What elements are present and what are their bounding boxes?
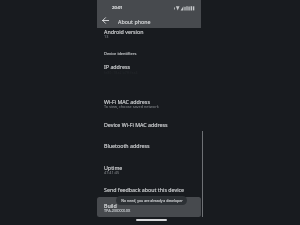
staticText: IP address bbox=[104, 63, 131, 70]
staticText: Device identifiers bbox=[104, 51, 137, 56]
staticText: Bluetooth address bbox=[104, 142, 150, 149]
staticText: TPA.230XXX.0X bbox=[104, 208, 131, 213]
button[interactable]: IP address bbox=[97, 62, 201, 96]
button[interactable]: Back bbox=[97, 12, 113, 28]
staticText: Wi-Fi MAC address bbox=[104, 98, 150, 105]
button[interactable]: Android version bbox=[97, 28, 201, 41]
staticText: No need, you are already a developer bbox=[121, 198, 183, 203]
staticText: About phone bbox=[118, 18, 151, 25]
button[interactable]: Device Wi-Fi MAC address bbox=[97, 118, 201, 131]
button[interactable]: Uptime bbox=[97, 162, 201, 178]
staticText: Build bbox=[104, 202, 117, 209]
staticText: Android version bbox=[104, 28, 144, 35]
button[interactable]: Send feedback about this device bbox=[97, 184, 201, 196]
staticText: 47:41:45 bbox=[104, 170, 120, 175]
button[interactable]: Build bbox=[97, 197, 201, 217]
staticText: Send feedback about this device bbox=[104, 186, 185, 193]
staticText: Device Wi-Fi MAC address bbox=[104, 121, 168, 128]
staticText: To view, choose saved network bbox=[104, 104, 159, 109]
staticText: 13 bbox=[104, 34, 109, 39]
staticText: Uptime bbox=[104, 164, 123, 171]
staticText: 20:01 bbox=[112, 5, 123, 11]
button[interactable]: Wi-Fi MAC address bbox=[97, 96, 201, 114]
button[interactable]: Bluetooth address bbox=[97, 140, 201, 153]
